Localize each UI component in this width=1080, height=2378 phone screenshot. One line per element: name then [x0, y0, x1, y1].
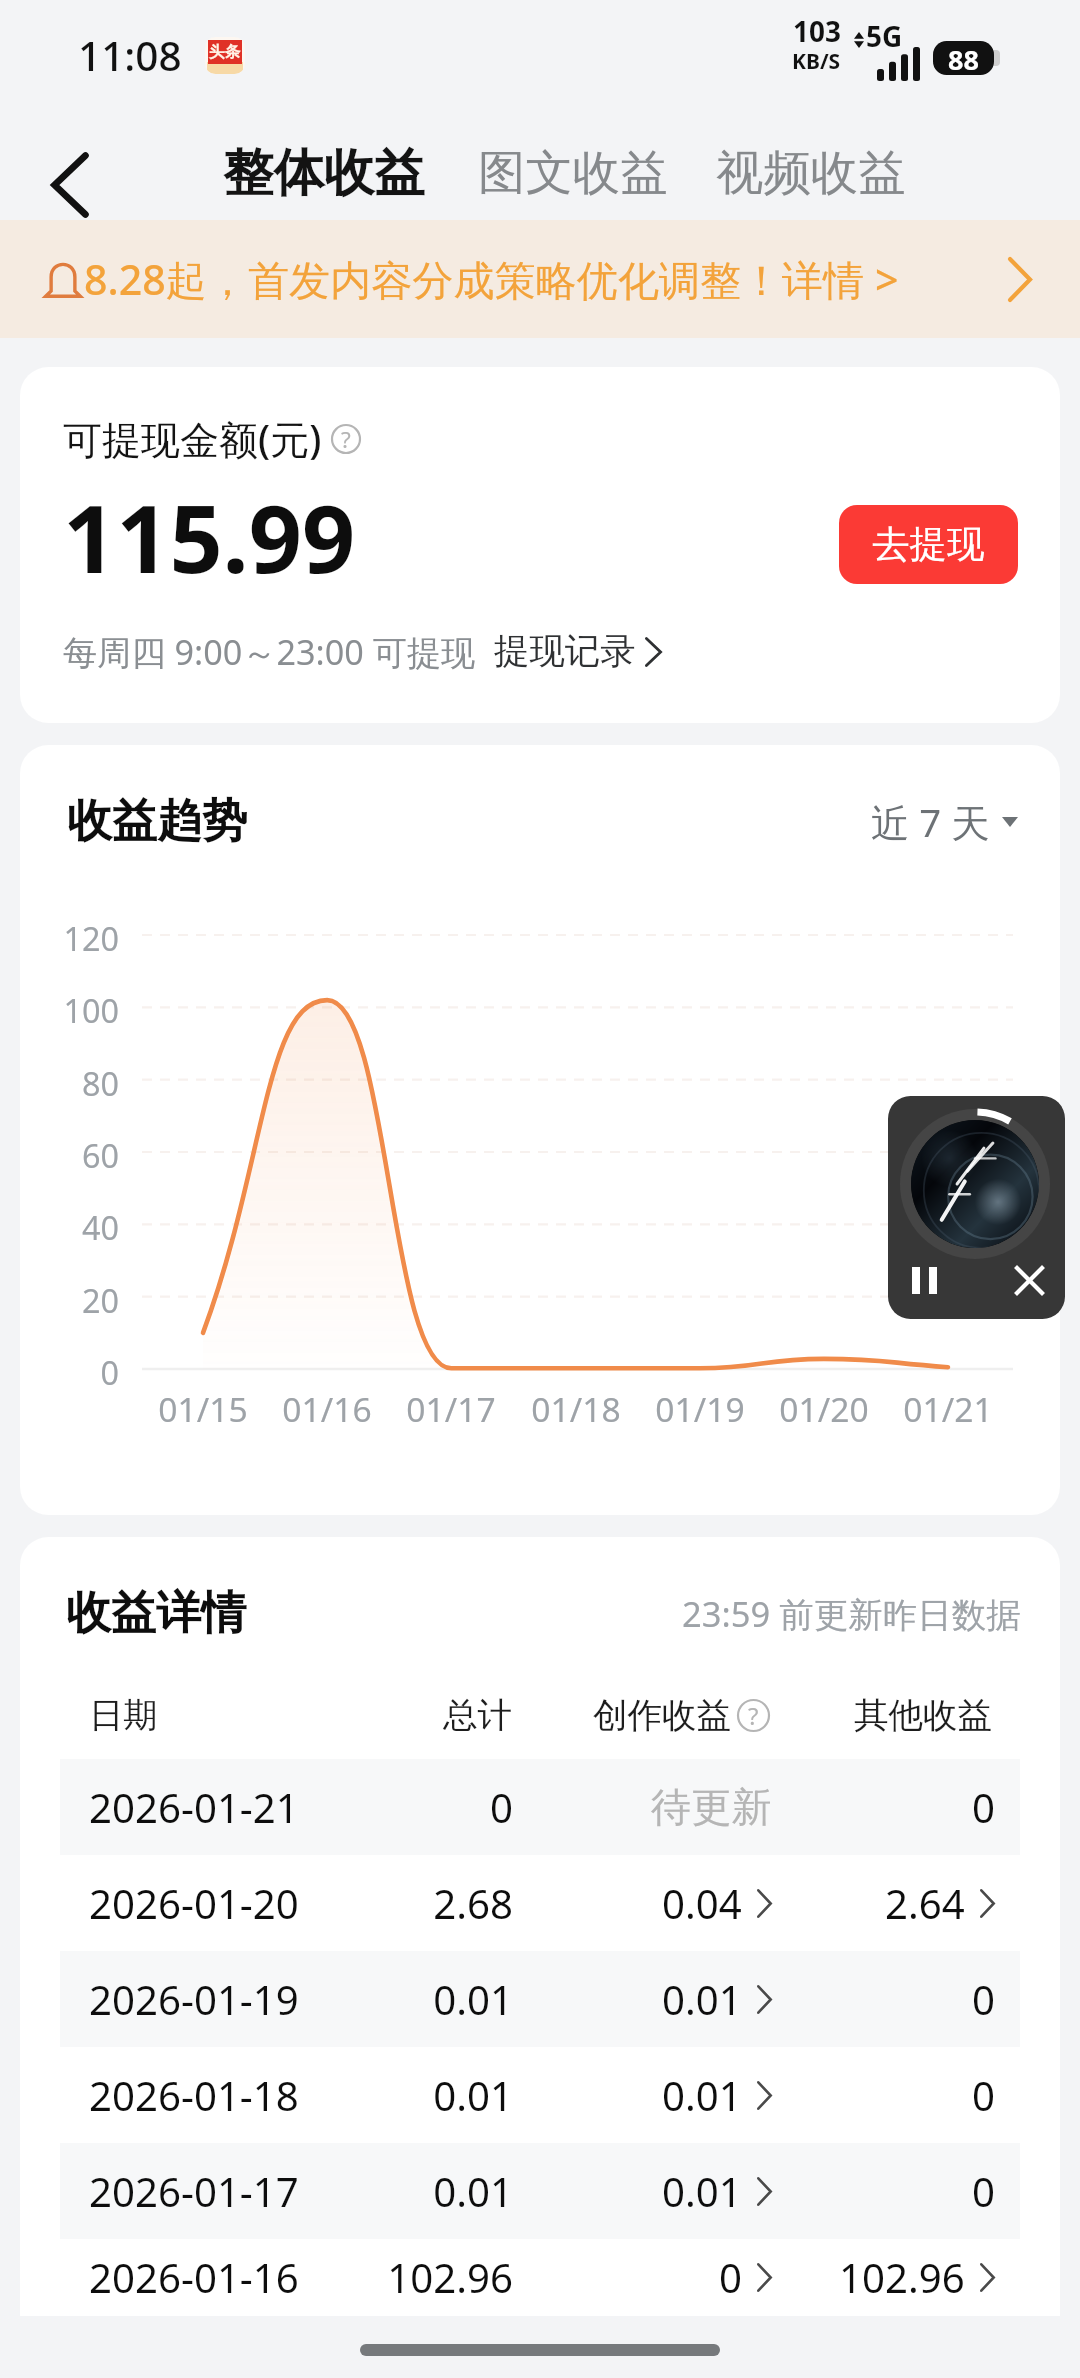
staticText: 视频收益: [716, 143, 906, 203]
staticText: 01/20: [769, 1386, 879, 1432]
staticText: 102.96: [330, 2250, 513, 2305]
staticText: 0.01: [330, 2164, 513, 2219]
button[interactable]: 视频收益: [716, 143, 906, 203]
staticText: 收益详情: [66, 1585, 246, 1642]
staticText: 2.68: [330, 1876, 513, 1931]
staticText: 60: [38, 1133, 119, 1177]
staticText: 2.64: [885, 1876, 965, 1931]
staticText: 2026-01-20: [89, 1876, 330, 1931]
staticText: 115.99: [63, 474, 356, 601]
staticText: 收益趋势: [67, 793, 247, 850]
staticText: 01/21: [893, 1386, 1003, 1432]
staticText: 近 7 天: [871, 796, 990, 848]
staticText: 20: [38, 1278, 119, 1322]
staticText: 01/16: [272, 1386, 382, 1432]
staticText: 0: [330, 1780, 513, 1835]
staticText: 2026-01-18: [89, 2068, 330, 2123]
button[interactable]: Pause: [903, 1258, 945, 1303]
staticText: KB/S: [792, 47, 841, 76]
staticText: 01/18: [521, 1386, 631, 1432]
staticText: 待更新: [651, 1782, 772, 1833]
staticText: 120: [38, 916, 119, 960]
staticText: 80: [38, 1061, 119, 1105]
staticText: 88: [948, 41, 979, 75]
staticText: 0.01: [330, 2068, 513, 2123]
button[interactable]: 2026-01-17: [60, 2143, 1020, 2239]
staticText: 100: [38, 988, 119, 1032]
staticText: 日期: [89, 1694, 330, 1737]
staticText: 0.01: [330, 1972, 513, 2027]
button[interactable]: Back: [16, 131, 124, 239]
staticText: 头条: [209, 42, 241, 62]
staticText: 0.04: [662, 1876, 742, 1931]
staticText: 103: [793, 12, 841, 50]
button[interactable]: 2026-01-21: [60, 1759, 1020, 1855]
staticText: 去提现: [872, 521, 985, 568]
button[interactable]: 2026-01-20: [60, 1855, 1020, 1951]
staticText: 0: [972, 1780, 995, 1835]
button[interactable]: 近 7 天: [871, 796, 1018, 848]
staticText: 102.96: [839, 2250, 965, 2305]
button[interactable]: 去提现: [839, 505, 1018, 584]
staticText: 5G: [866, 17, 903, 55]
staticText: 整体收益: [223, 141, 425, 204]
button[interactable]: 2026-01-16: [60, 2239, 1020, 2316]
staticText: 图文收益: [478, 143, 668, 203]
staticText: 2026-01-16: [89, 2250, 330, 2305]
staticText: 0: [972, 2068, 995, 2123]
staticText: 23:59 前更新昨日数据: [682, 1590, 1021, 1637]
button[interactable]: 图文收益: [478, 143, 668, 203]
staticText: 8.28起，首发内容分成策略优化调整！详情 >: [84, 251, 899, 307]
staticText: 创作收益: [593, 1694, 731, 1737]
staticText: 01/15: [148, 1386, 258, 1432]
staticText: 0.01: [662, 1972, 742, 2027]
button[interactable]: 2026-01-19: [60, 1951, 1020, 2047]
button[interactable]: 8.28起，首发内容分成策略优化调整！详情 >: [0, 220, 1080, 338]
button[interactable]: 2026-01-18: [60, 2047, 1020, 2143]
staticText: 其他收益: [770, 1694, 992, 1737]
staticText: 每周四 9:00～23:00 可提现: [63, 628, 476, 675]
staticText: 0: [38, 1350, 119, 1394]
staticText: 可提现金额(元): [63, 412, 322, 465]
staticText: 2026-01-19: [89, 1972, 330, 2027]
staticText: 01/19: [645, 1386, 755, 1432]
staticText: 01/17: [396, 1386, 506, 1432]
staticText: 2026-01-21: [89, 1780, 330, 1835]
staticText: 总计: [330, 1694, 512, 1737]
staticText: 0: [719, 2250, 742, 2305]
staticText: ?: [341, 424, 351, 454]
button[interactable]: 提现记录: [494, 629, 662, 674]
staticText: 11:08: [78, 28, 182, 83]
staticText: 2026-01-17: [89, 2164, 330, 2219]
staticText: 0: [972, 2164, 995, 2219]
staticText: 0.01: [662, 2068, 742, 2123]
staticText: 提现记录: [494, 629, 636, 674]
button[interactable]: 整体收益: [223, 141, 425, 204]
staticText: ?: [748, 1699, 759, 1732]
staticText: 0.01: [662, 2164, 742, 2219]
staticText: 0: [972, 1972, 995, 2027]
button[interactable]: Close: [1008, 1258, 1050, 1303]
staticText: 40: [38, 1205, 119, 1249]
